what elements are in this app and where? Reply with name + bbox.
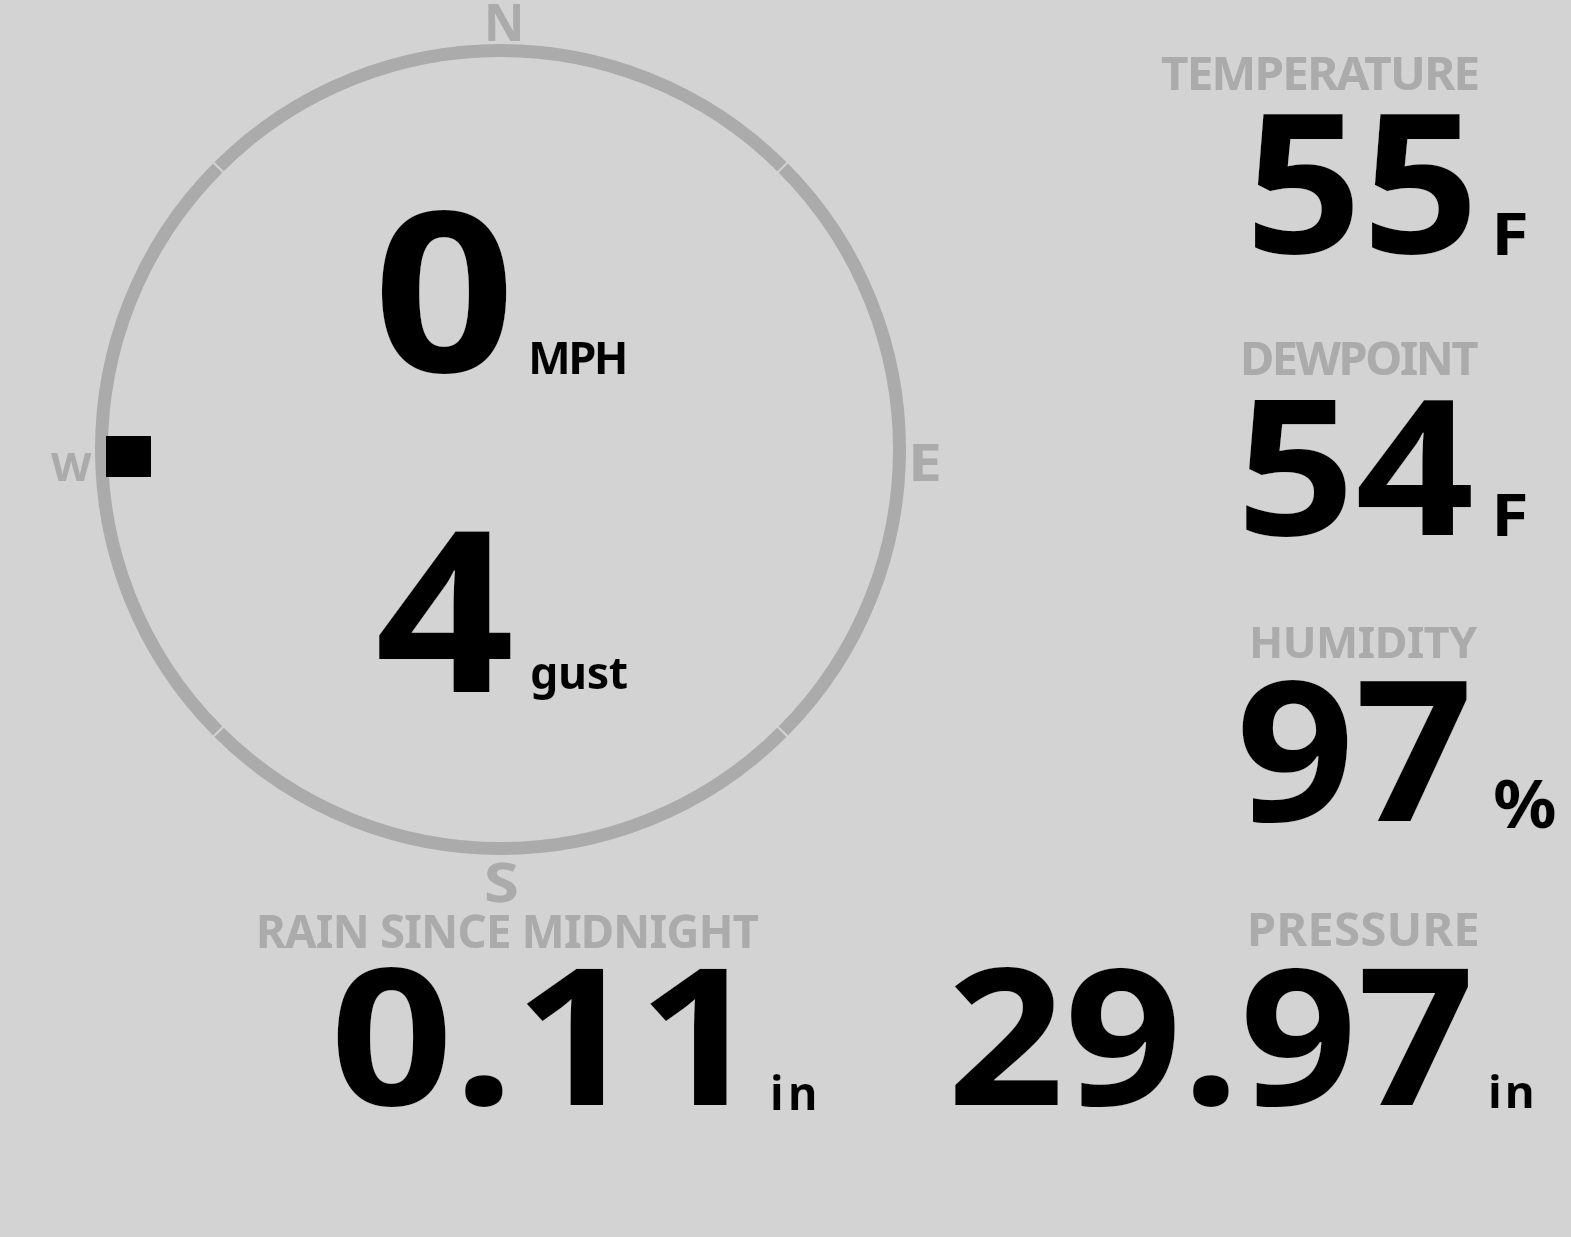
staticText: gust [530, 640, 628, 702]
button[interactable]: Wind: 0 miles per hour, gusting 4, from … [95, 44, 906, 855]
staticText: E [908, 426, 942, 496]
staticText: 97 [1236, 612, 1474, 879]
staticText: 0 [373, 135, 516, 437]
staticText: DEWPOINT [1240, 325, 1476, 388]
staticText: % [1493, 757, 1557, 848]
staticText: MPH [528, 326, 626, 388]
staticText: N [484, 0, 525, 57]
staticText: W [51, 438, 91, 493]
button[interactable]: Humidity 97 percent [1140, 610, 1560, 835]
button[interactable]: Rain since midnight 0.11 inches [240, 895, 840, 1120]
staticText: in [770, 1061, 822, 1124]
staticText: 54 [1236, 334, 1475, 590]
staticText: TEMPERATURE [1161, 41, 1479, 104]
staticText: HUMIDITY [1249, 611, 1477, 671]
button[interactable]: Dewpoint 54 degrees Fahrenheit [1140, 325, 1560, 550]
staticText: 4 [375, 453, 516, 758]
button[interactable]: Temperature 55 degrees Fahrenheit [1140, 40, 1560, 270]
staticText: in [1488, 1060, 1538, 1121]
staticText: 29.97 [947, 902, 1475, 1160]
staticText: RAIN SINCE MIDNIGHT [256, 899, 758, 962]
staticText: PRESSURE [1247, 896, 1481, 959]
staticText: S [484, 845, 519, 918]
button[interactable]: Pressure 29.97 inches [930, 890, 1560, 1120]
staticText: F [1491, 473, 1529, 554]
staticText: 55 [1245, 45, 1480, 310]
staticText: 0.11 [330, 901, 761, 1161]
staticText: F [1491, 191, 1529, 273]
